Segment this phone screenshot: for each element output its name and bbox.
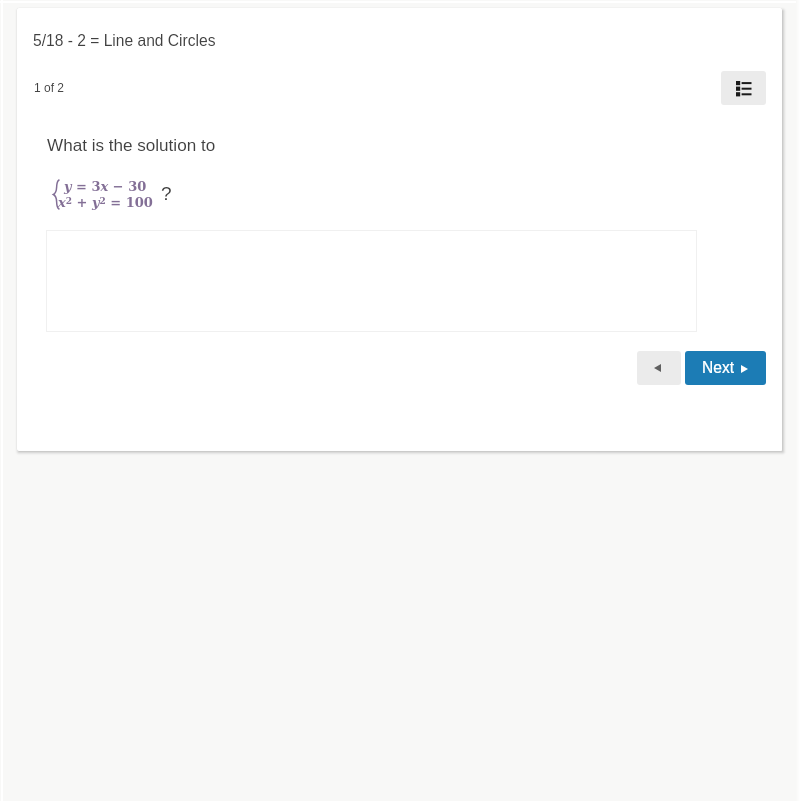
staticText: ? [161, 183, 172, 204]
staticText: y = 3x − 30 [64, 179, 147, 194]
button[interactable]: Previous question [637, 351, 681, 385]
staticText: Next [702, 359, 735, 376]
button[interactable]: Question list [721, 71, 766, 105]
button[interactable]: Next [685, 351, 766, 385]
staticText: 1 of 2 [34, 81, 65, 94]
staticText: What is the solution to [47, 136, 216, 155]
staticText: x2 + y2 = 100 [58, 195, 153, 210]
staticText: 5/18 - 2 = Line and Circles [33, 32, 216, 49]
